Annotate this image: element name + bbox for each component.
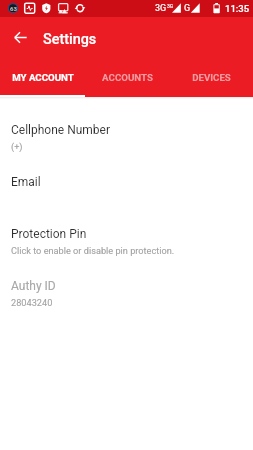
staticText: ACCOUNTS [102, 72, 153, 83]
staticText: Authy ID [11, 279, 56, 293]
staticText: 3G [155, 3, 167, 14]
button[interactable]: ACCOUNTS [85, 57, 169, 97]
staticText: Settings [43, 31, 97, 48]
staticText: (+) [11, 141, 23, 152]
staticText: 3G [167, 3, 174, 9]
staticText: Click to enable or disable pin protectio… [11, 245, 175, 256]
button[interactable]: Protection Pin [0, 227, 253, 279]
staticText: Email [11, 175, 41, 189]
staticText: 63 [10, 5, 17, 12]
staticText: MY ACCOUNT [12, 72, 74, 83]
button[interactable]: MY ACCOUNT [0, 57, 85, 97]
staticText: DEVICES [192, 72, 231, 83]
staticText: Protection Pin [11, 227, 87, 241]
button[interactable]: Navigate up [2, 19, 38, 55]
button[interactable]: Cellphone Number [0, 123, 253, 175]
staticText: 28043240 [11, 297, 53, 308]
button[interactable]: DEVICES [169, 57, 253, 97]
staticText: 11:35 [225, 3, 250, 14]
button[interactable]: Authy ID [0, 279, 253, 331]
button[interactable]: Email [0, 175, 253, 227]
staticText: G [184, 3, 191, 14]
staticText: Cellphone Number [11, 123, 111, 137]
